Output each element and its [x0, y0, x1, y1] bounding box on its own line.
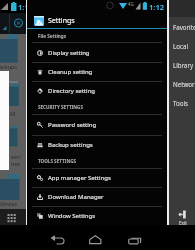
- staticText: Display setting: [48, 49, 90, 57]
- staticText: Tools: [173, 99, 189, 107]
- button[interactable]: Home: [89, 235, 106, 247]
- button[interactable]: Backup settings: [27, 135, 168, 155]
- staticText: M: [10, 110, 16, 118]
- staticText: SECURITY SETTINGS: [38, 104, 83, 110]
- staticText: Exit: [179, 220, 187, 226]
- button[interactable]: Recent apps: [128, 235, 145, 247]
- staticText: Backup settings: [48, 141, 93, 149]
- staticText: Window Settings: [48, 212, 96, 220]
- staticText: 1:12: [149, 2, 164, 12]
- staticText: Settings: [48, 16, 75, 26]
- staticText: Local: [173, 42, 189, 50]
- staticText: Download Manager: [48, 193, 104, 201]
- staticText: Password setting: [48, 121, 97, 129]
- staticText: Library: [173, 61, 194, 69]
- staticText: View: [6, 224, 17, 230]
- button[interactable]: Directory setting: [27, 81, 168, 101]
- button[interactable]: Local: [169, 36, 195, 55]
- staticText: 4G: [128, 1, 134, 7]
- staticText: Movies: [0, 200, 18, 207]
- staticText: ackups: [0, 63, 18, 70]
- button[interactable]: Library: [169, 55, 195, 74]
- staticText: 1:11: [18, 2, 33, 12]
- button[interactable]: Display setting: [27, 42, 168, 63]
- button[interactable]: Password setting: [27, 114, 168, 135]
- staticText: Network: [173, 80, 195, 88]
- staticText: App manager Settings: [48, 174, 111, 182]
- button[interactable]: Cleanup setting: [27, 62, 168, 81]
- staticText: TOOLS SETTINGS: [38, 158, 76, 164]
- button[interactable]: Back: [50, 235, 67, 247]
- button[interactable]: Download Manager: [27, 187, 168, 206]
- staticText: Cleanup setting: [48, 68, 93, 76]
- button[interactable]: Tools: [169, 93, 195, 112]
- staticText: Directory setting: [48, 87, 95, 95]
- staticText: File Settings: [38, 33, 67, 39]
- staticText: een: [11, 153, 21, 160]
- button[interactable]: App manager Settings: [27, 168, 168, 187]
- staticText: Favorites: [173, 23, 195, 31]
- staticText: nes: [11, 160, 21, 167]
- button[interactable]: Network: [169, 74, 195, 93]
- button[interactable]: Exit: [169, 210, 195, 231]
- button[interactable]: Favorites: [169, 17, 195, 36]
- button[interactable]: Settings: [27, 13, 168, 28]
- button[interactable]: Window Settings: [27, 206, 168, 225]
